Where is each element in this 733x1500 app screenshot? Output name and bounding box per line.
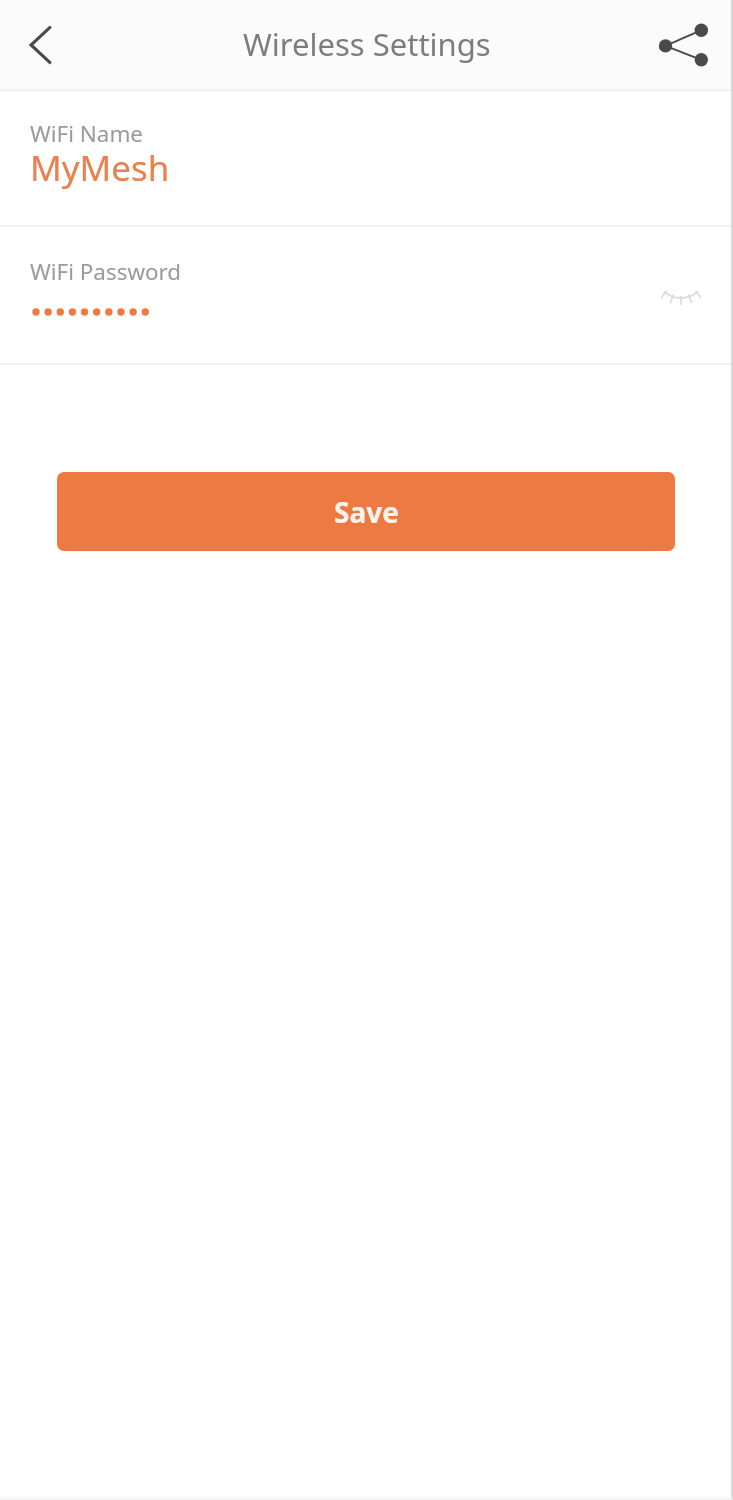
button[interactable]: Share xyxy=(647,0,733,89)
button[interactable]: WiFi Password xyxy=(0,227,733,363)
staticText: WiFi Password xyxy=(30,256,182,287)
staticText: Wireless Settings xyxy=(243,23,491,65)
button[interactable]: Save xyxy=(57,472,675,551)
staticText: MyMesh xyxy=(30,144,170,192)
button[interactable]: Show password xyxy=(633,227,733,363)
button[interactable]: WiFi Name xyxy=(0,91,733,225)
staticText: WiFi Name xyxy=(30,118,143,149)
staticText: Save xyxy=(334,493,399,531)
button[interactable]: Back xyxy=(0,0,86,89)
